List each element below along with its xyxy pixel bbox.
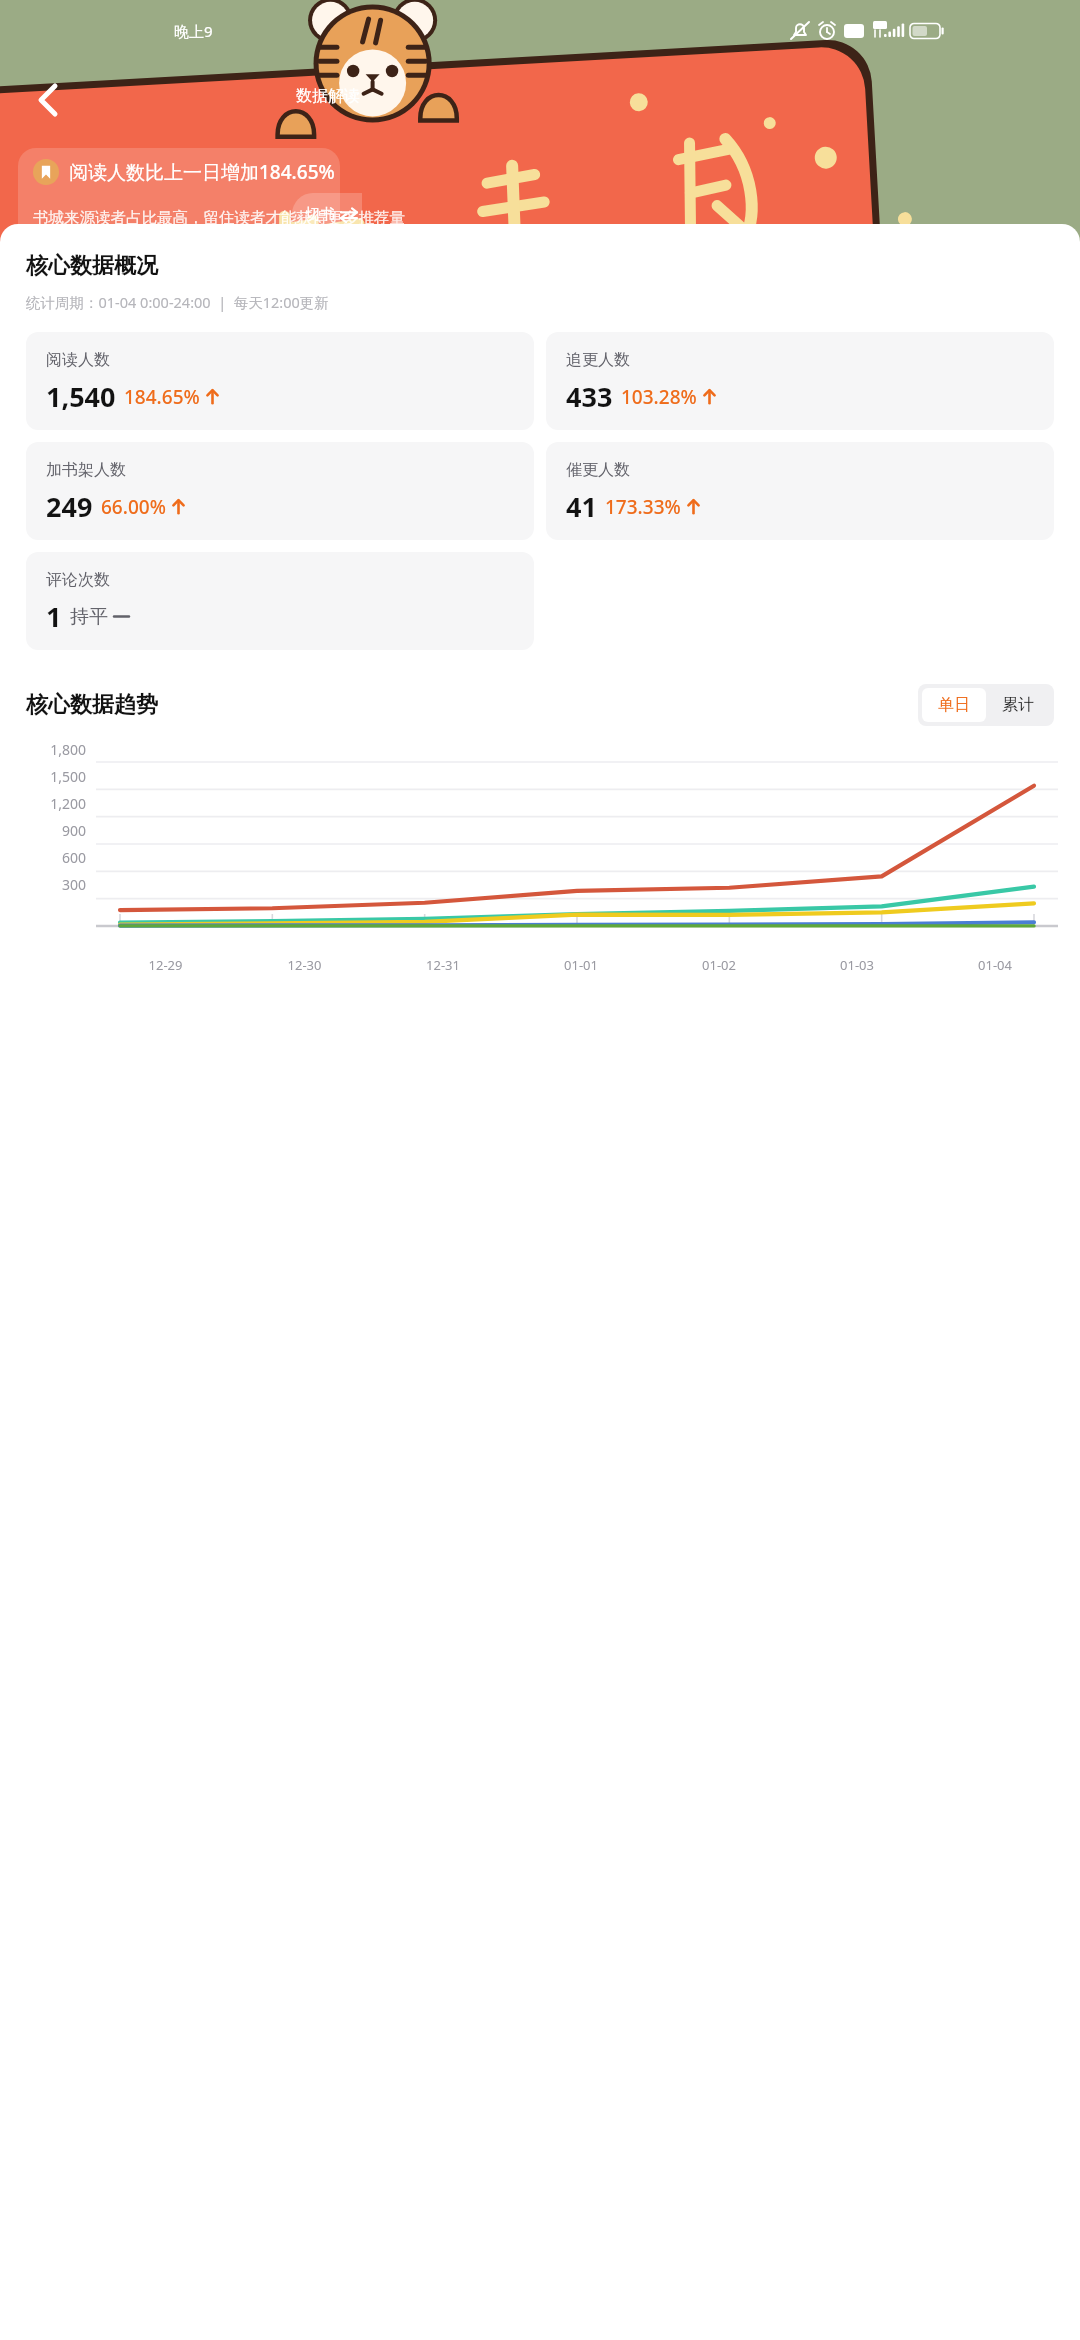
- button[interactable]: 评论次数: [26, 552, 534, 650]
- staticText: 阅读人数: [46, 350, 110, 370]
- staticText: 催更人数: [566, 460, 630, 480]
- staticText: 单日: [938, 695, 970, 715]
- button[interactable]: 加书架人数: [26, 442, 534, 540]
- button[interactable]: 数据解读: [288, 80, 368, 112]
- staticText: 600: [8, 848, 86, 867]
- button[interactable]: Back: [20, 72, 76, 128]
- staticText: 持平: [70, 605, 108, 629]
- staticText: 12-29: [96, 956, 235, 974]
- button[interactable]: 阅读人数: [26, 332, 534, 430]
- staticText: 数据解读: [296, 86, 360, 106]
- staticText: 追更人数: [566, 350, 630, 370]
- staticText: 1,200: [8, 794, 86, 813]
- staticText: 173.33%: [605, 494, 681, 520]
- button[interactable]: 单日: [922, 688, 986, 722]
- staticText: 晚上9: [174, 21, 213, 41]
- staticText: 66.00%: [101, 494, 166, 520]
- staticText: 加书架人数: [46, 460, 126, 480]
- staticText: 433: [566, 378, 613, 415]
- staticText: 300: [8, 875, 86, 894]
- button[interactable]: 切书: [292, 193, 362, 235]
- staticText: 01-02: [650, 956, 788, 974]
- staticText: 249: [46, 488, 93, 525]
- staticText: 1: [46, 598, 62, 635]
- staticText: 核心数据概况: [26, 252, 158, 280]
- staticText: 12-31: [374, 956, 512, 974]
- staticText: 1,540: [46, 378, 116, 415]
- staticText: 103.28%: [621, 384, 697, 410]
- staticText: 01-04: [926, 956, 1064, 974]
- staticText: 阅读人数比上一日增加184.65%: [69, 159, 335, 185]
- button[interactable]: 追更人数: [546, 332, 1054, 430]
- staticText: 评论次数: [46, 570, 110, 590]
- staticText: 统计周期：01-04 0:00-24:00 | 每天12:00更新: [26, 292, 329, 312]
- button[interactable]: 累计: [986, 688, 1050, 722]
- staticText: 41: [566, 488, 597, 525]
- staticText: 累计: [1002, 695, 1034, 715]
- staticText: 900: [8, 821, 86, 840]
- staticText: 切书: [305, 205, 335, 224]
- staticText: 01-01: [512, 956, 650, 974]
- button[interactable]: 催更人数: [546, 442, 1054, 540]
- staticText: 01-03: [788, 956, 926, 974]
- staticText: 1,800: [8, 740, 86, 759]
- staticText: 12-30: [235, 956, 374, 974]
- staticText: 1,500: [8, 767, 86, 786]
- staticText: 184.65%: [124, 384, 200, 410]
- staticText: 书城来源读者占比最高，留住读者才能获得更多推荐量: [33, 208, 405, 228]
- staticText: 核心数据趋势: [26, 691, 158, 719]
